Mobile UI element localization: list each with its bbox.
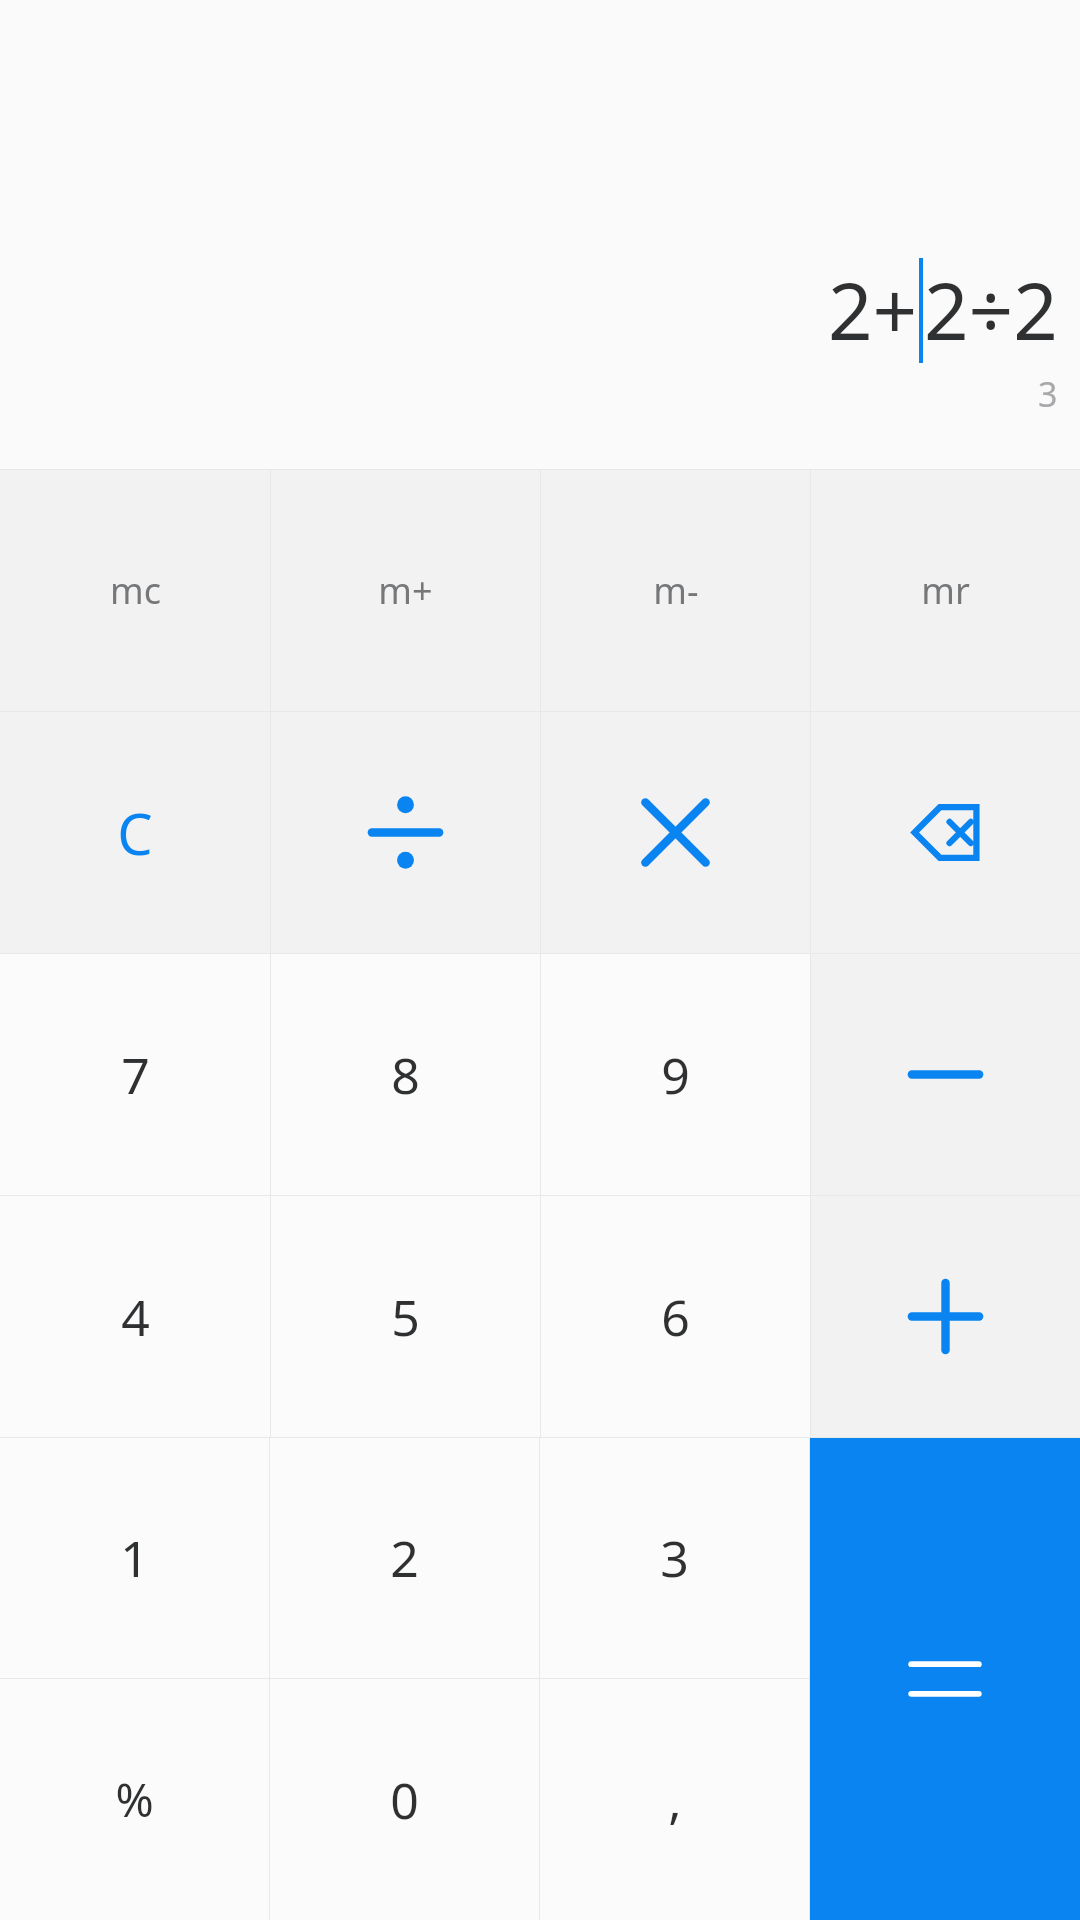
- staticText: 3: [660, 1524, 689, 1592]
- staticText: ,: [668, 1766, 682, 1834]
- staticText: 6: [661, 1283, 690, 1351]
- staticText: 1: [120, 1524, 149, 1592]
- staticText: m-: [653, 566, 699, 615]
- staticText: 5: [391, 1283, 420, 1351]
- button[interactable]: m+: [271, 470, 540, 711]
- staticText: 2: [390, 1524, 419, 1592]
- button[interactable]: 4: [0, 1196, 270, 1437]
- staticText: 2+: [828, 257, 918, 363]
- staticText: 3: [1038, 371, 1058, 417]
- staticText: 8: [391, 1041, 420, 1109]
- staticText: 9: [661, 1041, 690, 1109]
- staticText: 4: [121, 1283, 150, 1351]
- button[interactable]: mr: [811, 470, 1080, 711]
- button[interactable]: Plus: [811, 1196, 1080, 1437]
- button[interactable]: 2: [270, 1438, 539, 1678]
- button[interactable]: Divide: [271, 712, 540, 953]
- button[interactable]: 1: [0, 1438, 269, 1678]
- button[interactable]: Minus: [811, 954, 1080, 1195]
- staticText: m+: [378, 566, 433, 615]
- button[interactable]: Multiply: [541, 712, 810, 953]
- staticText: 0: [390, 1766, 419, 1834]
- button[interactable]: 0: [270, 1679, 539, 1920]
- button[interactable]: C: [0, 712, 270, 953]
- button[interactable]: 5: [271, 1196, 540, 1437]
- button[interactable]: 3: [540, 1438, 809, 1678]
- button[interactable]: ,: [540, 1679, 809, 1920]
- button[interactable]: %: [0, 1679, 269, 1920]
- button[interactable]: Equals: [810, 1438, 1080, 1920]
- button[interactable]: 9: [541, 954, 810, 1195]
- staticText: %: [115, 1768, 154, 1831]
- staticText: C: [117, 795, 153, 871]
- button[interactable]: 6: [541, 1196, 810, 1437]
- button[interactable]: mc: [0, 470, 270, 711]
- button[interactable]: Backspace: [811, 712, 1080, 953]
- button[interactable]: 8: [271, 954, 540, 1195]
- staticText: 7: [121, 1041, 150, 1109]
- staticText: mc: [110, 566, 161, 615]
- staticText: mr: [921, 566, 970, 615]
- staticText: 2÷2: [924, 257, 1058, 363]
- button[interactable]: 7: [0, 954, 270, 1195]
- button[interactable]: m-: [541, 470, 810, 711]
